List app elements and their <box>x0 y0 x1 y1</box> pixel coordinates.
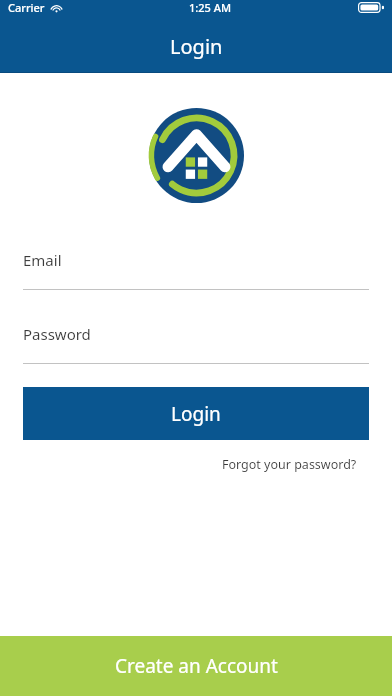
staticText: 1:25 AM <box>189 0 232 15</box>
button[interactable]: Forgot your password? <box>218 452 361 477</box>
staticText: Login <box>171 401 221 427</box>
other: App logo <box>149 108 244 203</box>
button[interactable]: Password <box>0 314 392 364</box>
button[interactable]: Create an Account <box>0 636 392 696</box>
other: Battery <box>358 2 384 13</box>
staticText: Email <box>23 250 62 270</box>
staticText: Carrier <box>8 0 45 15</box>
staticText: Forgot your password? <box>222 456 357 473</box>
staticText: Create an Account <box>115 653 278 679</box>
staticText: Password <box>23 324 91 344</box>
button[interactable]: Email <box>0 240 392 290</box>
button[interactable]: Login <box>23 387 369 440</box>
staticText: Login <box>170 33 223 60</box>
other: Wi-Fi signal <box>50 1 63 14</box>
